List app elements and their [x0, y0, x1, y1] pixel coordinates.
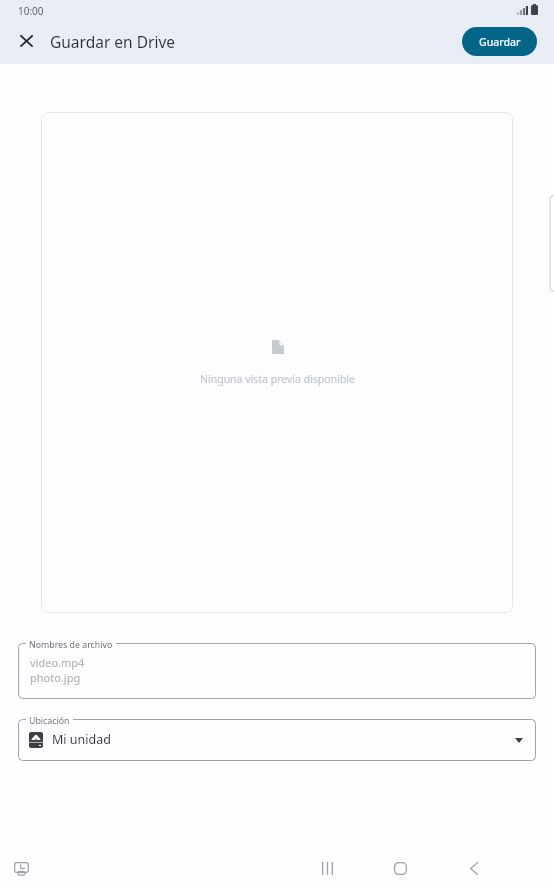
staticText: Mi unidad	[52, 731, 111, 748]
button[interactable]: Ocultar teclado	[6, 853, 36, 883]
button[interactable]: Guardar	[462, 27, 537, 56]
staticText: Ninguna vista previa disponible	[200, 372, 355, 386]
staticText: Guardar	[479, 35, 521, 49]
staticText: photo.jpg	[30, 670, 81, 685]
staticText: Ubicación	[29, 715, 70, 727]
staticText: 10:00	[18, 4, 44, 18]
button[interactable]: Aplicaciones recientes	[305, 851, 350, 886]
staticText: video.mp4	[30, 655, 85, 670]
button[interactable]: Inicio	[378, 851, 423, 886]
button[interactable]: Mi unidad	[18, 719, 536, 761]
button[interactable]: Cerrar	[8, 23, 44, 59]
button[interactable]: Atrás	[451, 851, 496, 886]
staticText: Nombres de archivo	[29, 639, 113, 651]
staticText: Guardar en Drive	[50, 31, 175, 52]
